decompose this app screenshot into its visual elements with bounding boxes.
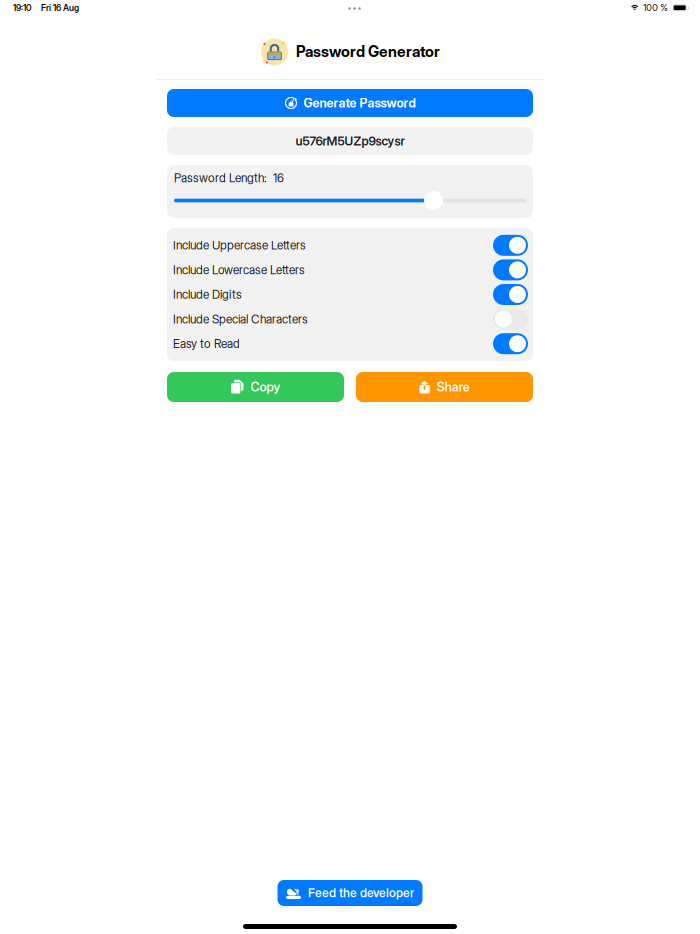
staticText: • • • xyxy=(348,3,361,13)
staticText: 19:10 xyxy=(13,2,32,13)
staticText: 100 % xyxy=(643,2,668,13)
button[interactable]: Easy to Read xyxy=(167,331,533,356)
staticText: Include Lowercase Letters xyxy=(173,263,305,277)
staticText: Include Special Characters xyxy=(173,312,308,326)
staticText: Copy xyxy=(250,379,280,395)
staticText: Password Generator xyxy=(296,42,440,61)
button[interactable]: Include Digits xyxy=(167,282,533,307)
button[interactable]: Include Lowercase Letters xyxy=(167,258,533,282)
button[interactable]: Include Special Characters xyxy=(167,307,533,331)
staticText: Generate Password xyxy=(303,95,415,110)
staticText: u576rM5UZp9scysr xyxy=(295,134,404,148)
staticText: Easy to Read xyxy=(173,336,240,351)
staticText: Include Uppercase Letters xyxy=(173,238,306,252)
staticText: Fri 16 Aug xyxy=(41,2,79,13)
staticText: Feed the developer xyxy=(308,886,414,900)
button[interactable]: Generate Password xyxy=(167,89,533,117)
button[interactable]: Feed the developer xyxy=(277,880,422,906)
staticText: Share xyxy=(437,379,470,395)
button[interactable]: Copy xyxy=(167,372,344,402)
staticText: Include Digits xyxy=(173,287,242,302)
staticText: Password Length: 16 xyxy=(174,171,284,185)
button[interactable]: Share xyxy=(356,372,533,402)
button[interactable]: Include Uppercase Letters xyxy=(167,233,533,258)
